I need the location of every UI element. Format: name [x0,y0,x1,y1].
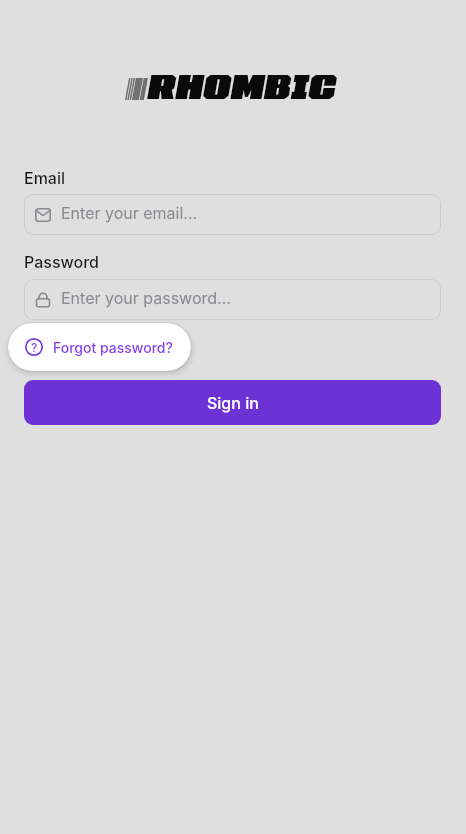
staticText: Email [24,168,66,187]
staticText: Enter your email... [61,203,198,222]
staticText: Enter your password... [61,288,231,307]
staticText: RHOMBIC [146,66,335,105]
staticText: Password [24,252,99,271]
staticText: Sign in [207,393,259,412]
staticText: Forgot password? [53,339,173,356]
staticText: ? [31,340,38,355]
